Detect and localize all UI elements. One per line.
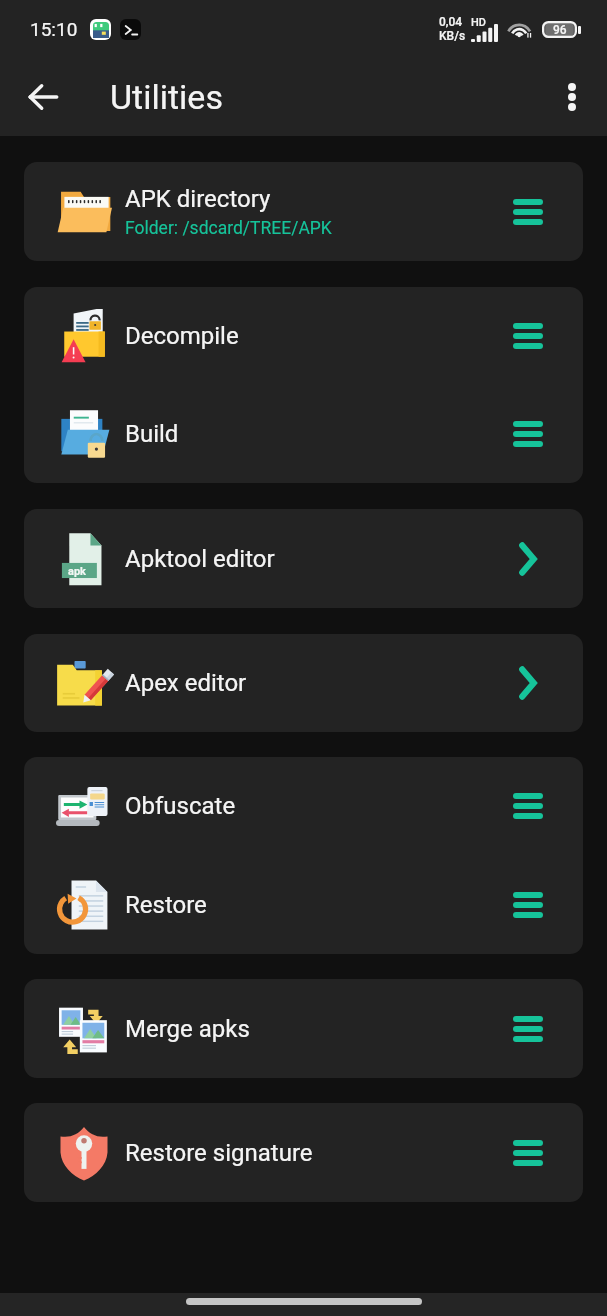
staticText: apk [68,565,86,578]
staticText: 0,04 [439,15,463,29]
staticText: Restore signature [125,1139,313,1167]
button[interactable]: apk [24,509,583,608]
staticText: Apex editor [125,669,247,697]
button[interactable]: Merge apks [24,979,583,1078]
staticText: KB/s [439,29,466,43]
staticText: 15:10 [30,18,78,40]
button[interactable]: Build [24,385,583,483]
staticText: Folder: /sdcard/TREE/APK [125,218,332,239]
button[interactable]: More options [549,74,595,120]
button[interactable]: Obfuscate [24,757,583,855]
staticText: HD [471,16,487,29]
staticText: Merge apks [125,1015,250,1043]
staticText: APK directory [125,185,271,213]
staticText: Build [125,420,179,448]
staticText: Obfuscate [125,792,236,820]
button[interactable]: Restore [24,855,583,954]
staticText: Decompile [125,322,239,350]
staticText: Utilities [110,77,223,117]
staticText: Restore [125,891,207,919]
button[interactable]: Restore signature [24,1103,583,1202]
button[interactable]: APK directory [24,162,583,261]
button[interactable]: Apex editor [24,634,583,732]
button[interactable]: Decompile [24,287,583,385]
button[interactable]: Back [19,73,67,121]
staticText: 96 [553,23,567,37]
staticText: Apktool editor [125,545,275,573]
